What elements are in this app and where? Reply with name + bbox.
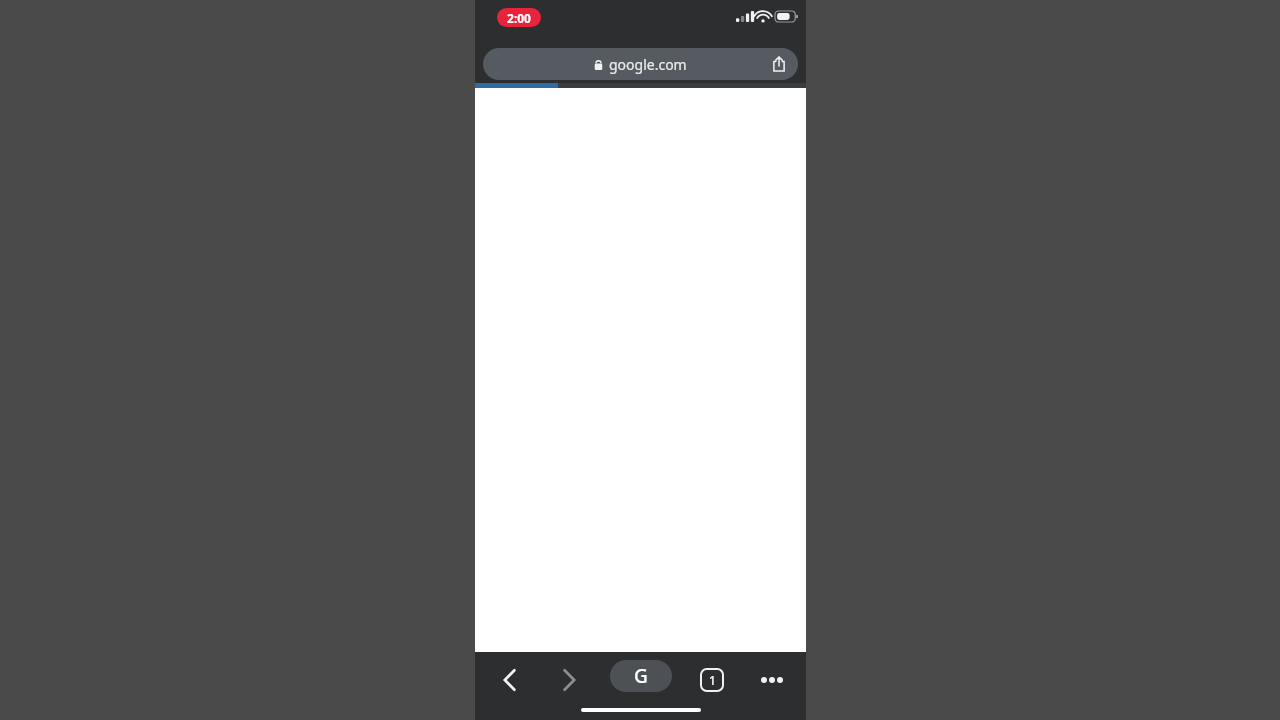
button[interactable]: Share [766, 51, 792, 77]
button[interactable]: Back [489, 660, 529, 700]
button[interactable]: Google Search [610, 660, 672, 692]
staticText: 1 [709, 672, 716, 688]
button[interactable]: More options [752, 660, 792, 700]
staticText: 2:00 [507, 10, 531, 26]
button[interactable]: Tabs [692, 660, 732, 700]
staticText: google.com [609, 55, 687, 74]
button[interactable]: google.com [483, 48, 798, 80]
button[interactable]: Forward [549, 660, 589, 700]
staticText: G [634, 663, 648, 689]
